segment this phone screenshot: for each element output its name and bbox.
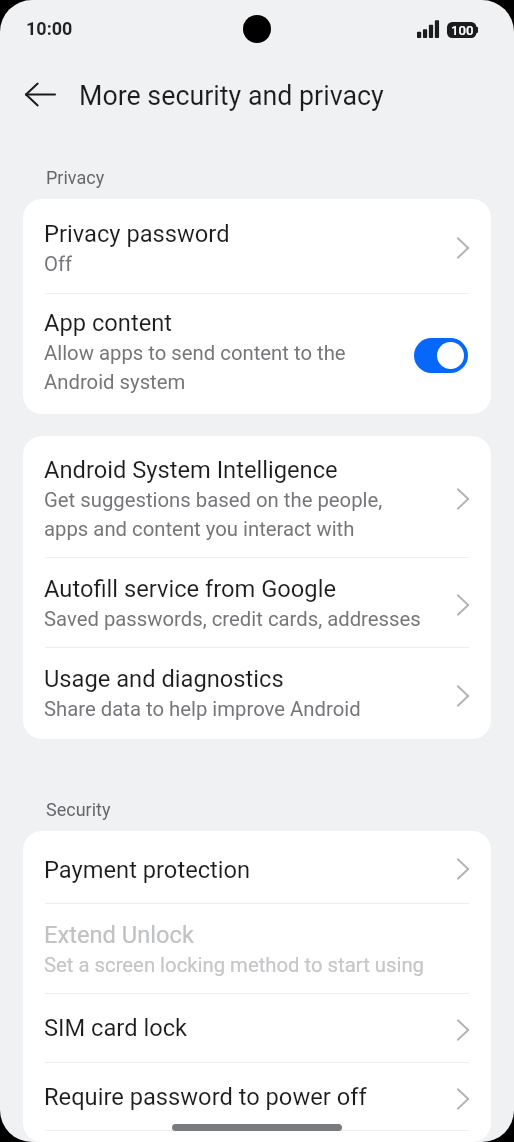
button[interactable]: App content <box>23 294 491 414</box>
staticText: 10:00 <box>26 18 73 40</box>
staticText: Saved passwords, credit cards, addresses <box>44 603 451 632</box>
staticText: Usage and diagnostics <box>44 663 284 693</box>
button[interactable]: Autofill service from Google <box>23 558 491 647</box>
button[interactable]: Require password to power off <box>23 1063 491 1130</box>
staticText: Extend Unlock <box>44 919 194 949</box>
button[interactable]: SIM card lock <box>23 994 491 1062</box>
staticText: Security <box>46 799 111 821</box>
staticText: Android System Intelligence <box>44 454 338 484</box>
staticText: Autofill service from Google <box>44 573 336 603</box>
staticText: Allow apps to send content to the Androi… <box>44 337 351 395</box>
staticText: 100 <box>451 23 474 38</box>
staticText: Get suggestions based on the people, app… <box>44 484 418 542</box>
staticText: Privacy <box>46 167 105 189</box>
button[interactable]: Android System Intelligence <box>23 436 491 557</box>
button[interactable]: Payment protection <box>23 831 491 903</box>
staticText: Off <box>44 248 451 277</box>
button[interactable]: App content switch, on <box>414 338 468 373</box>
button[interactable]: Privacy password <box>23 199 491 293</box>
staticText: Require password to power off <box>44 1081 367 1111</box>
staticText: More security and privacy <box>79 78 384 112</box>
staticText: Privacy password <box>44 218 230 248</box>
staticText: App content <box>44 307 173 337</box>
button[interactable]: Extend Unlock <box>23 904 491 993</box>
button[interactable]: Navigate up <box>14 68 66 120</box>
staticText: Set a screen locking method to start usi… <box>44 949 475 978</box>
staticText: SIM card lock <box>44 1012 188 1042</box>
staticText: Share data to help improve Android <box>44 693 451 722</box>
staticText: Payment protection <box>44 854 251 884</box>
button[interactable]: Usage and diagnostics <box>23 648 491 739</box>
